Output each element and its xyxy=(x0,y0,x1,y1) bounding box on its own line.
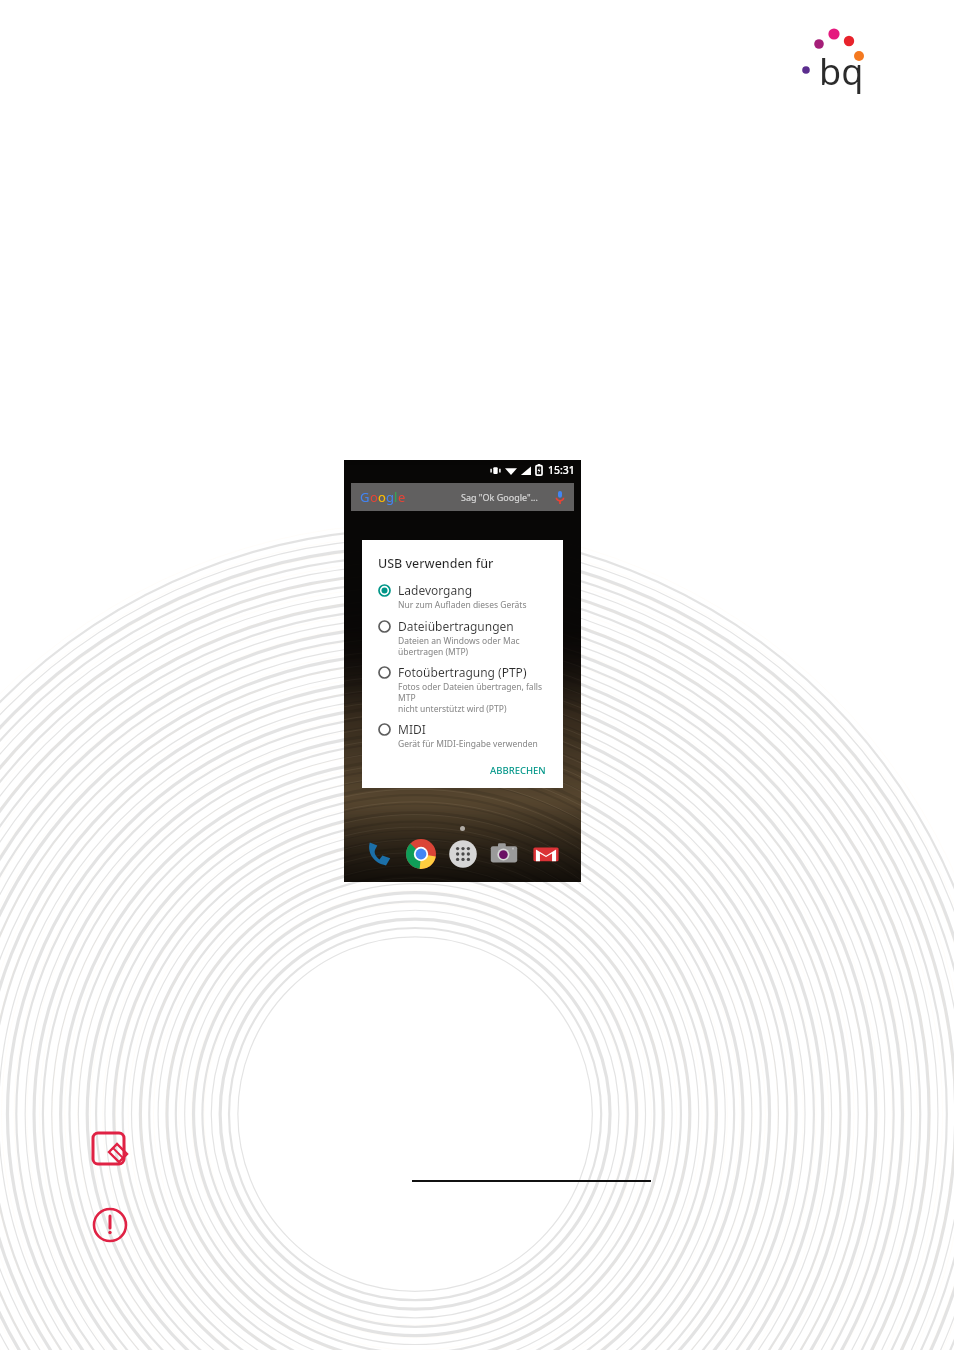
button[interactable]: MIDI xyxy=(378,721,551,750)
staticText: l xyxy=(394,488,398,506)
staticText: G xyxy=(360,488,370,506)
button[interactable]: Ladevorgang xyxy=(378,582,551,611)
staticText: ABBRECHEN xyxy=(490,764,546,777)
button[interactable]: Phone xyxy=(365,839,395,869)
staticText: g xyxy=(386,488,394,506)
staticText: Dateiübertragungen xyxy=(398,618,514,634)
button[interactable]: Dateiübertragungen xyxy=(378,618,551,657)
staticText: Gerät für MIDI-Eingabe verwenden xyxy=(398,738,538,750)
staticText: Nur zum Aufladen dieses Geräts xyxy=(398,599,527,611)
staticText: o xyxy=(378,488,386,506)
staticText: Ladevorgang xyxy=(398,582,473,598)
button[interactable]: Chrome xyxy=(406,839,436,869)
staticText: Fotos oder Dateien übertragen, falls MTP… xyxy=(398,681,551,714)
staticText: bq xyxy=(819,47,864,96)
button[interactable]: ABBRECHEN xyxy=(485,761,551,780)
button[interactable]: Fotoübertragung (PTP) xyxy=(378,664,551,714)
staticText: MIDI xyxy=(398,721,426,737)
staticText: o xyxy=(370,488,378,506)
button[interactable]: Apps xyxy=(448,839,478,869)
staticText: Dateien an Windows oder Mac übertragen (… xyxy=(398,635,520,657)
staticText: Sag "Ok Google"... xyxy=(461,491,538,503)
staticText: 15:31 xyxy=(548,463,575,477)
button[interactable]: Gmail xyxy=(531,839,561,869)
button[interactable]: G xyxy=(351,483,574,511)
staticText: e xyxy=(398,488,406,506)
button[interactable]: Camera xyxy=(489,839,519,869)
staticText: USB verwenden für xyxy=(378,555,494,572)
staticText: Fotoübertragung (PTP) xyxy=(398,664,527,680)
